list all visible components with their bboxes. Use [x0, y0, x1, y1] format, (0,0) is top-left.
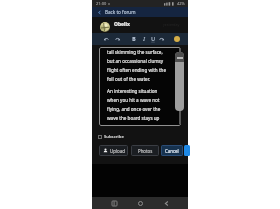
staticText: I — [143, 36, 145, 43]
staticText: wave the board stays up — [107, 115, 173, 121]
button[interactable]: Redo — [114, 34, 120, 44]
button[interactable]: B — [131, 34, 136, 44]
staticText: U — [151, 36, 155, 43]
staticText: foil out of the water. — [107, 76, 173, 82]
button[interactable]: U — [150, 34, 155, 44]
button[interactable]: Subscribe — [98, 132, 133, 141]
staticText: B — [132, 36, 136, 43]
staticText: flight often ending with the — [107, 67, 173, 73]
staticText: Upload — [110, 148, 125, 154]
button[interactable]: Redo — [158, 34, 164, 44]
button[interactable]: Avatar — [100, 22, 110, 32]
button[interactable]: Cancel — [161, 145, 183, 156]
staticText: but an occassional clumsy — [107, 58, 173, 64]
staticText: when you hit a wave not — [107, 97, 173, 103]
button[interactable]: Back — [92, 7, 188, 17]
button[interactable]: Undo — [103, 34, 109, 44]
button[interactable]: Upload — [99, 145, 128, 156]
button[interactable]: I — [141, 34, 146, 44]
staticText: Photos — [138, 148, 153, 154]
staticText: tail skimming the surface, — [107, 49, 173, 55]
button[interactable]: Recent apps — [103, 197, 125, 209]
button[interactable]: Home — [129, 197, 151, 209]
staticText: An interesting situation — [107, 88, 173, 94]
staticText: Cancel — [165, 148, 179, 154]
staticText: 42% — [177, 1, 185, 6]
button[interactable]: Back — [155, 197, 177, 209]
button[interactable]: Emoji — [174, 36, 180, 42]
button[interactable]: Post — [184, 145, 190, 156]
staticText: flying, and once over the — [107, 106, 173, 112]
staticText: Back to forum — [105, 9, 136, 15]
other: Back — [97, 10, 102, 15]
button[interactable]: Photos — [131, 145, 159, 156]
staticText: Subscribe — [104, 134, 124, 140]
staticText: 21:00 — [96, 1, 107, 6]
staticText: yesterday — [163, 22, 180, 27]
staticText: Obelix — [114, 21, 130, 28]
